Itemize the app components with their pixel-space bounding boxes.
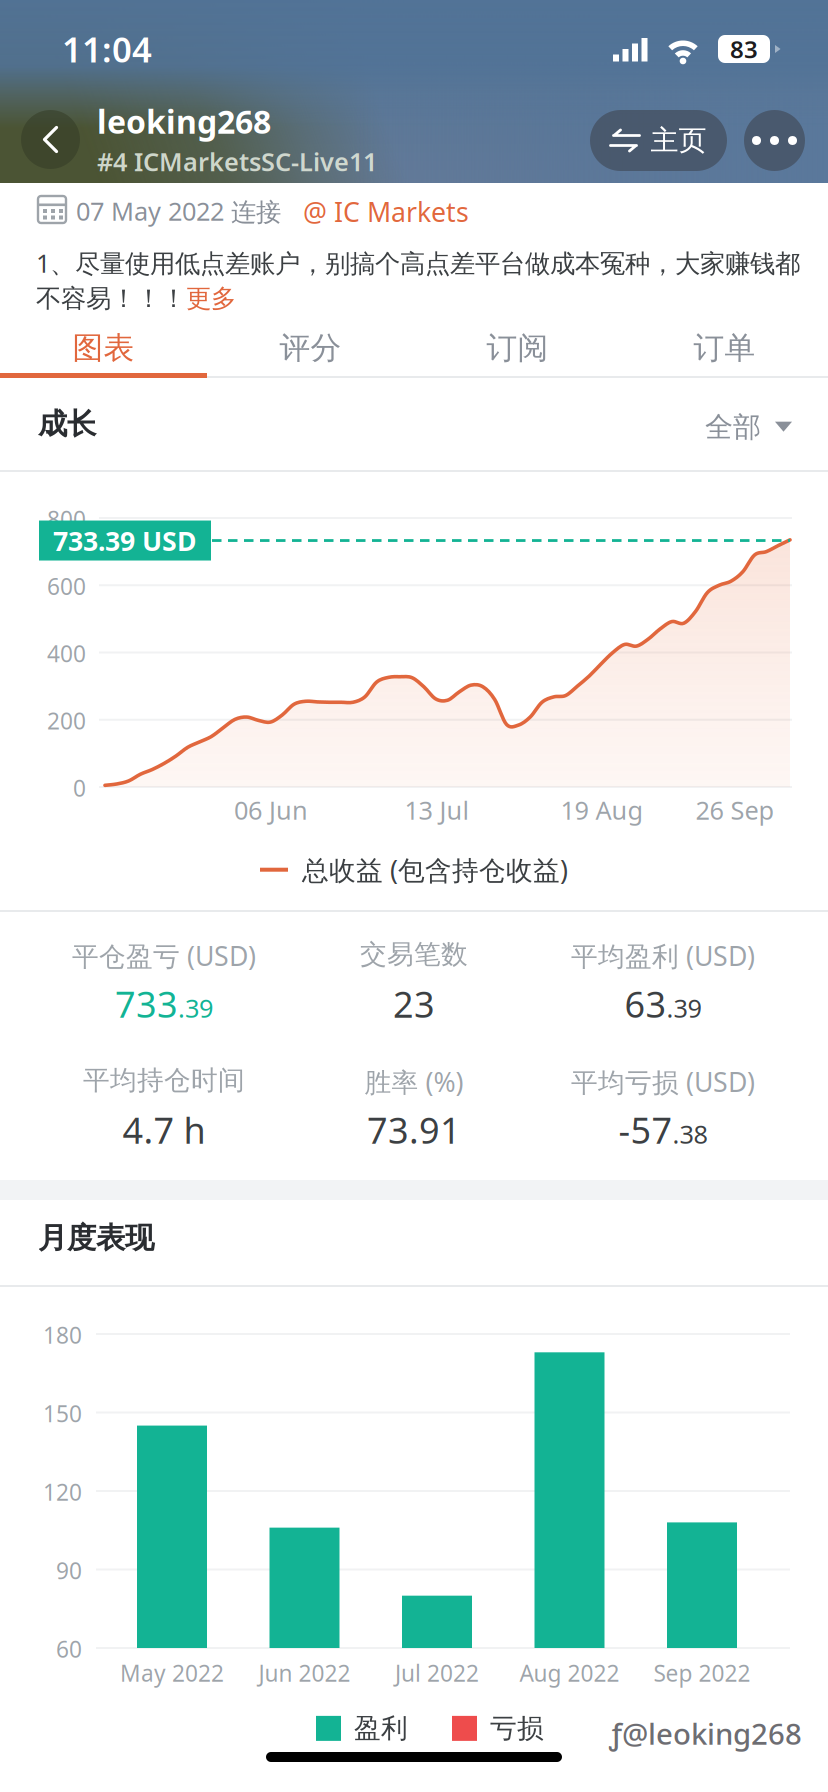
staticText: May 2022 bbox=[120, 1658, 224, 1688]
staticText: 60 bbox=[56, 1634, 82, 1664]
staticText: .38 bbox=[672, 1117, 707, 1151]
staticText: 平均盈利 (USD) bbox=[571, 938, 755, 973]
staticText: 更多 bbox=[186, 283, 236, 314]
staticText: 不容易！！！ bbox=[36, 283, 186, 314]
staticText: 120 bbox=[43, 1477, 82, 1507]
staticText: 图表 bbox=[72, 329, 134, 367]
staticText: 200 bbox=[47, 706, 86, 736]
button[interactable]: 主页 bbox=[590, 110, 727, 171]
staticText: 1、尽量使用低点差账户，别搞个高点差平台做成本冤种，大家赚钱都 bbox=[36, 246, 800, 280]
staticText: 600 bbox=[47, 571, 86, 601]
staticText: 交易笔数 bbox=[360, 938, 468, 971]
button[interactable]: 评分 bbox=[207, 320, 414, 376]
button[interactable]: 订阅 bbox=[414, 320, 621, 376]
staticText: -57 bbox=[618, 1106, 672, 1154]
staticText: 90 bbox=[56, 1555, 82, 1586]
staticText: 月度表现 bbox=[38, 1220, 154, 1256]
staticText: 平均持仓时间 bbox=[83, 1064, 245, 1097]
staticText: 订单 bbox=[693, 329, 755, 367]
staticText: 成长 bbox=[38, 406, 96, 442]
staticText: leoking268 bbox=[97, 100, 271, 142]
staticText: Sep 2022 bbox=[653, 1658, 750, 1688]
staticText: 06 Jun bbox=[234, 793, 308, 827]
staticText: 23 bbox=[393, 980, 435, 1028]
staticText: 180 bbox=[43, 1320, 82, 1350]
staticText: 主页 bbox=[650, 123, 706, 158]
staticText: 400 bbox=[47, 638, 86, 669]
staticText: Jul 2022 bbox=[395, 1658, 479, 1688]
staticText: .39 bbox=[666, 991, 701, 1025]
staticText: 800 bbox=[47, 504, 86, 534]
staticText: 83 bbox=[730, 33, 758, 65]
staticText: 总收益 (包含持仓收益) bbox=[302, 852, 568, 887]
staticText: 订阅 bbox=[486, 329, 548, 367]
staticText: 全部 bbox=[705, 410, 761, 444]
staticText: 平均亏损 (USD) bbox=[571, 1064, 755, 1099]
staticText: 733.39 USD bbox=[53, 523, 197, 558]
staticText: @ IC Markets bbox=[303, 194, 469, 229]
staticText: .39 bbox=[178, 991, 213, 1025]
staticText: 733 bbox=[115, 980, 178, 1028]
staticText: 07 May 2022 连接 bbox=[76, 194, 281, 228]
staticText: 盈利 bbox=[354, 1712, 408, 1745]
staticText: 150 bbox=[43, 1398, 82, 1429]
staticText: 11:04 bbox=[62, 26, 152, 72]
staticText: 4.7 h bbox=[122, 1106, 205, 1154]
button[interactable]: @ IC Markets bbox=[303, 194, 469, 229]
button[interactable]: More options bbox=[744, 110, 805, 171]
staticText: Aug 2022 bbox=[519, 1658, 619, 1688]
staticText: 胜率 (%) bbox=[364, 1064, 463, 1099]
staticText: 26 Sep bbox=[695, 793, 774, 827]
button[interactable]: Back bbox=[21, 110, 80, 169]
staticText: #4 ICMarketsSC-Live11 bbox=[97, 144, 377, 178]
button[interactable]: 更多 bbox=[186, 283, 236, 314]
staticText: ƒ@leoking268 bbox=[609, 1714, 802, 1753]
button[interactable]: 全部 bbox=[705, 410, 792, 444]
staticText: 73.91 bbox=[367, 1106, 461, 1154]
staticText: 0 bbox=[73, 773, 86, 803]
staticText: 平仓盈亏 (USD) bbox=[72, 938, 256, 973]
staticText: 评分 bbox=[279, 329, 341, 367]
staticText: 19 Aug bbox=[560, 793, 643, 827]
staticText: 亏损 bbox=[490, 1712, 544, 1745]
button[interactable]: 订单 bbox=[621, 320, 828, 376]
staticText: 13 Jul bbox=[404, 793, 469, 827]
staticText: Jun 2022 bbox=[258, 1658, 350, 1688]
button[interactable]: 图表 bbox=[0, 320, 207, 376]
staticText: 63 bbox=[624, 980, 666, 1028]
